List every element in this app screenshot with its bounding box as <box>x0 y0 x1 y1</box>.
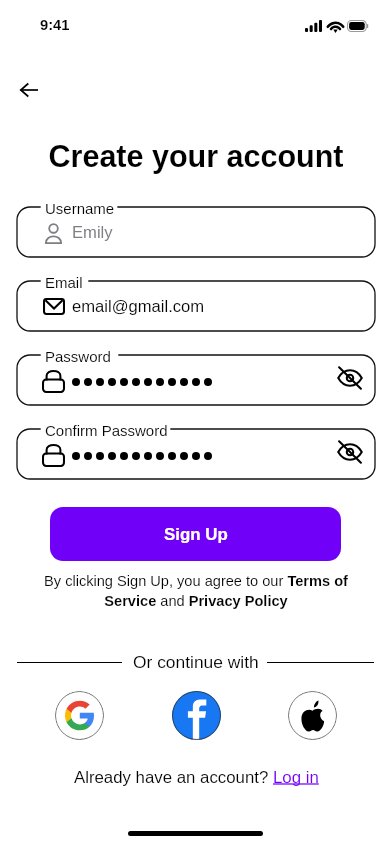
staticText: Create your account <box>0 139 392 173</box>
staticText: Or continue with <box>133 652 259 671</box>
button[interactable]: Back <box>7 68 50 111</box>
staticText: Emily <box>72 223 113 242</box>
button[interactable]: Toggle password visibility <box>336 366 364 394</box>
staticText: Sign Up <box>164 525 228 544</box>
staticText: 9:41 <box>40 17 70 33</box>
staticText: Password <box>45 348 111 365</box>
button[interactable]: Toggle password visibility <box>336 440 364 468</box>
button[interactable]: Sign up with Google <box>55 691 104 740</box>
button[interactable]: Sign up with Facebook <box>172 691 221 740</box>
button[interactable]: Sign up with Apple <box>288 691 337 740</box>
staticText: Username <box>45 200 115 217</box>
button[interactable]: Log in <box>273 768 319 787</box>
staticText: Already have an account? <box>74 768 273 787</box>
staticText: Confirm Password <box>45 422 168 439</box>
staticText: email@gmail.com <box>72 297 205 316</box>
staticText: By clicking Sign Up, you agree to our Te… <box>40 573 352 610</box>
button[interactable]: Sign Up <box>50 507 341 561</box>
staticText: Email <box>45 274 83 291</box>
